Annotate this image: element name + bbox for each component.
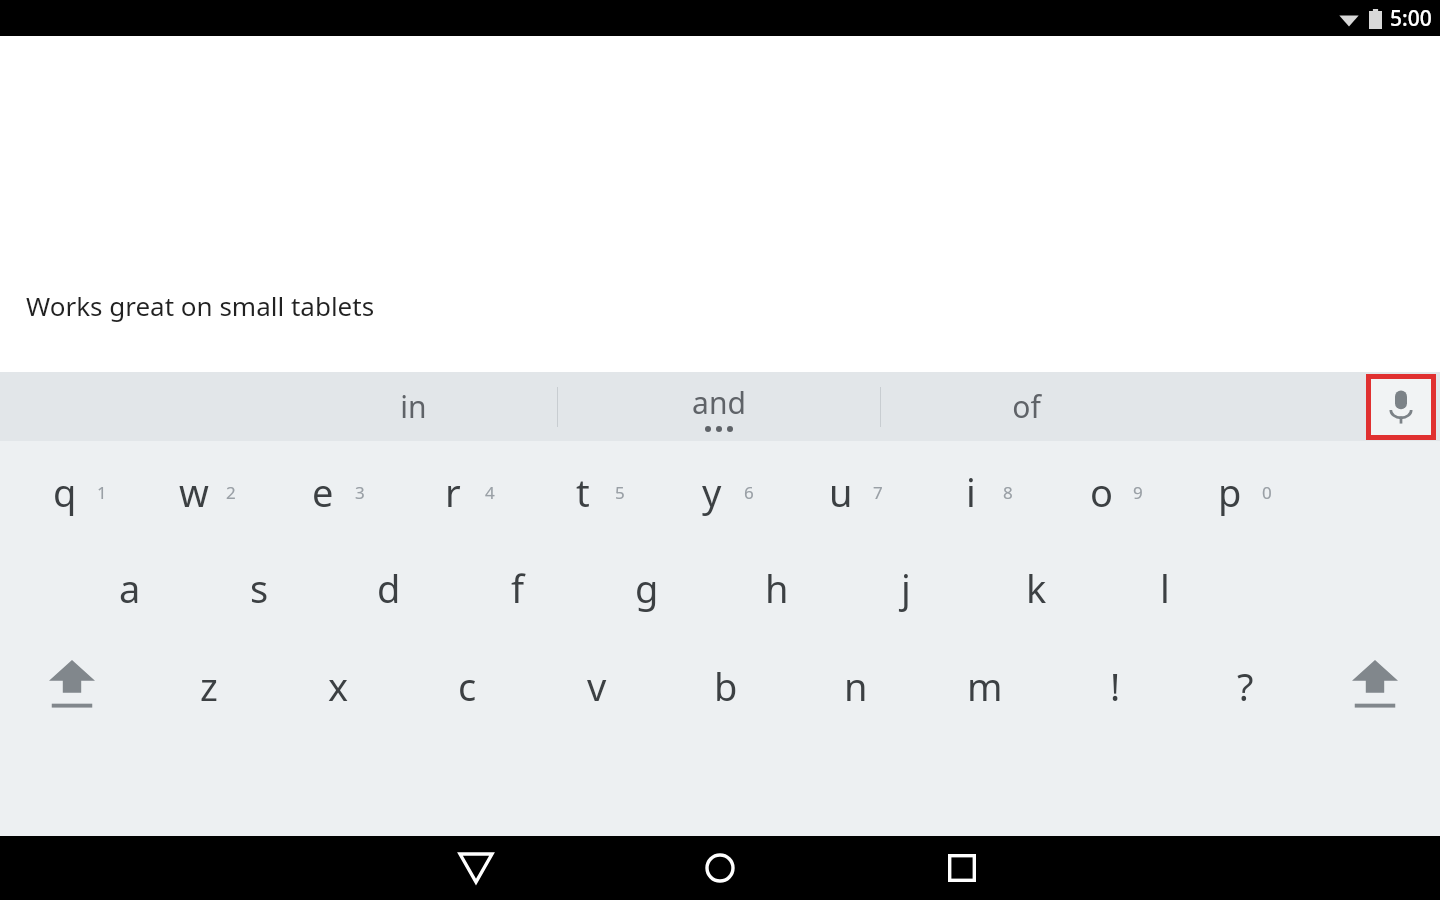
button[interactable]: s bbox=[197, 542, 321, 634]
staticText: 5:00 bbox=[1390, 4, 1432, 33]
staticText: s bbox=[250, 562, 269, 614]
staticText: 9 bbox=[1133, 481, 1143, 504]
staticText: q bbox=[53, 466, 77, 518]
staticText: ! bbox=[1110, 660, 1121, 712]
button[interactable]: p bbox=[1168, 446, 1292, 538]
button[interactable]: w bbox=[132, 446, 256, 538]
staticText: Works great on small tablets bbox=[26, 288, 375, 323]
button[interactable]: d bbox=[327, 542, 451, 634]
staticText: 7 bbox=[873, 481, 883, 504]
button[interactable]: in bbox=[263, 372, 563, 441]
staticText: y bbox=[702, 466, 722, 518]
staticText: 1 bbox=[97, 481, 107, 504]
staticText: o bbox=[1090, 466, 1113, 518]
staticText: u bbox=[829, 466, 853, 518]
button[interactable]: o bbox=[1039, 446, 1163, 538]
button[interactable]: Shift bbox=[10, 640, 134, 732]
staticText: 8 bbox=[1003, 481, 1013, 504]
button[interactable]: ? bbox=[1183, 640, 1307, 732]
staticText: z bbox=[200, 660, 218, 712]
staticText: 6 bbox=[744, 481, 754, 504]
staticText: d bbox=[377, 562, 401, 614]
button[interactable]: a bbox=[68, 542, 192, 634]
staticText: k bbox=[1026, 562, 1047, 614]
staticText: 3 bbox=[355, 481, 365, 504]
staticText: x bbox=[328, 660, 349, 712]
button[interactable]: and bbox=[569, 372, 869, 441]
button[interactable]: Shift right bbox=[1313, 640, 1437, 732]
button[interactable]: z bbox=[147, 640, 271, 732]
button[interactable]: h bbox=[715, 542, 839, 634]
button[interactable]: l bbox=[1103, 542, 1227, 634]
staticText: c bbox=[458, 660, 477, 712]
button[interactable]: c bbox=[405, 640, 529, 732]
button[interactable]: Back bbox=[416, 836, 536, 900]
staticText: 4 bbox=[485, 481, 495, 504]
staticText: j bbox=[901, 562, 911, 614]
staticText: v bbox=[587, 660, 607, 712]
staticText: p bbox=[1218, 466, 1242, 518]
button[interactable]: n bbox=[794, 640, 918, 732]
button[interactable]: ! bbox=[1053, 640, 1177, 732]
staticText: g bbox=[635, 562, 659, 614]
button[interactable]: f bbox=[456, 542, 580, 634]
staticText: n bbox=[844, 660, 868, 712]
staticText: in bbox=[400, 386, 427, 427]
staticText: a bbox=[119, 562, 141, 614]
staticText: and bbox=[692, 382, 746, 423]
staticText: l bbox=[1160, 562, 1170, 614]
button[interactable]: r bbox=[391, 446, 515, 538]
button[interactable]: k bbox=[974, 542, 1098, 634]
button[interactable]: t bbox=[521, 446, 645, 538]
staticText: e bbox=[312, 466, 334, 518]
button[interactable]: e bbox=[261, 446, 385, 538]
button[interactable]: j bbox=[844, 542, 968, 634]
staticText: r bbox=[445, 466, 461, 518]
staticText: f bbox=[511, 562, 525, 614]
button[interactable]: Recent apps bbox=[902, 836, 1022, 900]
staticText: h bbox=[765, 562, 789, 614]
button[interactable]: x bbox=[276, 640, 400, 732]
button[interactable]: v bbox=[535, 640, 659, 732]
button[interactable]: Voice input bbox=[1371, 379, 1431, 435]
button[interactable]: of bbox=[876, 372, 1176, 441]
button[interactable]: y bbox=[650, 446, 774, 538]
button[interactable]: b bbox=[664, 640, 788, 732]
button[interactable]: m bbox=[923, 640, 1047, 732]
button[interactable]: Home bbox=[660, 836, 780, 900]
button[interactable]: g bbox=[585, 542, 709, 634]
staticText: w bbox=[179, 466, 209, 518]
staticText: m bbox=[967, 660, 1003, 712]
button[interactable]: u bbox=[779, 446, 903, 538]
staticText: b bbox=[714, 660, 738, 712]
button[interactable]: q bbox=[3, 446, 127, 538]
staticText: 2 bbox=[226, 481, 236, 504]
staticText: 5 bbox=[615, 481, 625, 504]
staticText: i bbox=[966, 466, 976, 518]
staticText: 0 bbox=[1262, 481, 1272, 504]
button[interactable]: i bbox=[909, 446, 1033, 538]
staticText: ? bbox=[1237, 660, 1254, 712]
staticText: t bbox=[576, 466, 590, 518]
staticText: of bbox=[1012, 386, 1041, 427]
